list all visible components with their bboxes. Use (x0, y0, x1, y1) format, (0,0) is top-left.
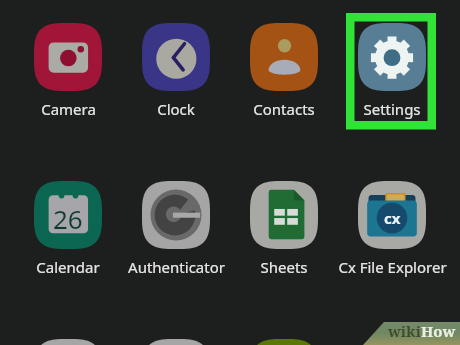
button[interactable]: Clock (122, 23, 230, 119)
staticText: Sheets (260, 257, 308, 277)
button[interactable]: Contacts (230, 23, 338, 119)
staticText: Authenticator (128, 257, 225, 277)
button[interactable]: App (122, 339, 230, 345)
button[interactable]: App (230, 339, 338, 345)
staticText: cx (384, 208, 401, 228)
staticText: Settings (363, 99, 421, 119)
button[interactable]: Settings (338, 23, 446, 119)
button[interactable]: Sheets (230, 181, 338, 277)
button[interactable]: Calendar (14, 181, 122, 277)
staticText: Camera (41, 99, 96, 119)
staticText: Calendar (36, 257, 100, 277)
staticText: 26 (53, 201, 83, 236)
staticText: Contacts (253, 99, 315, 119)
staticText: Cx File Explorer (338, 257, 446, 277)
staticText: wiki (388, 321, 421, 341)
staticText: How (421, 321, 456, 341)
button[interactable]: Cx File Explorer (338, 181, 446, 277)
button[interactable]: Authenticator (122, 181, 230, 277)
button[interactable]: App (338, 339, 446, 345)
button[interactable]: App (14, 339, 122, 345)
staticText: Clock (157, 99, 195, 119)
button[interactable]: Camera (14, 23, 122, 119)
